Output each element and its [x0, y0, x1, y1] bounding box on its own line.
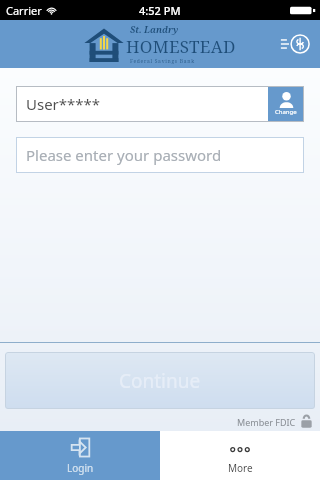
button[interactable]: Login: [0, 431, 160, 480]
button[interactable]: User*****: [16, 86, 304, 122]
staticText: St. Landry: [130, 23, 179, 35]
button[interactable]: Continue: [5, 352, 315, 409]
button[interactable]: Please enter your password: [16, 137, 304, 173]
staticText: Login: [67, 461, 94, 475]
staticText: 4:52 PM: [139, 3, 181, 18]
staticText: More: [228, 461, 253, 475]
button[interactable]: Rates: [277, 26, 313, 62]
staticText: Member FDIC: [237, 416, 296, 428]
staticText: Please enter your password: [26, 145, 222, 165]
button[interactable]: Change user: [268, 86, 304, 122]
staticText: Change: [275, 108, 297, 116]
staticText: Continue: [119, 368, 201, 394]
staticText: Carrier: [6, 3, 42, 18]
staticText: Federal Savings Bank: [130, 58, 195, 65]
staticText: HOMESTEAD: [126, 35, 236, 58]
staticText: User*****: [26, 94, 268, 114]
button[interactable]: More: [160, 431, 320, 480]
